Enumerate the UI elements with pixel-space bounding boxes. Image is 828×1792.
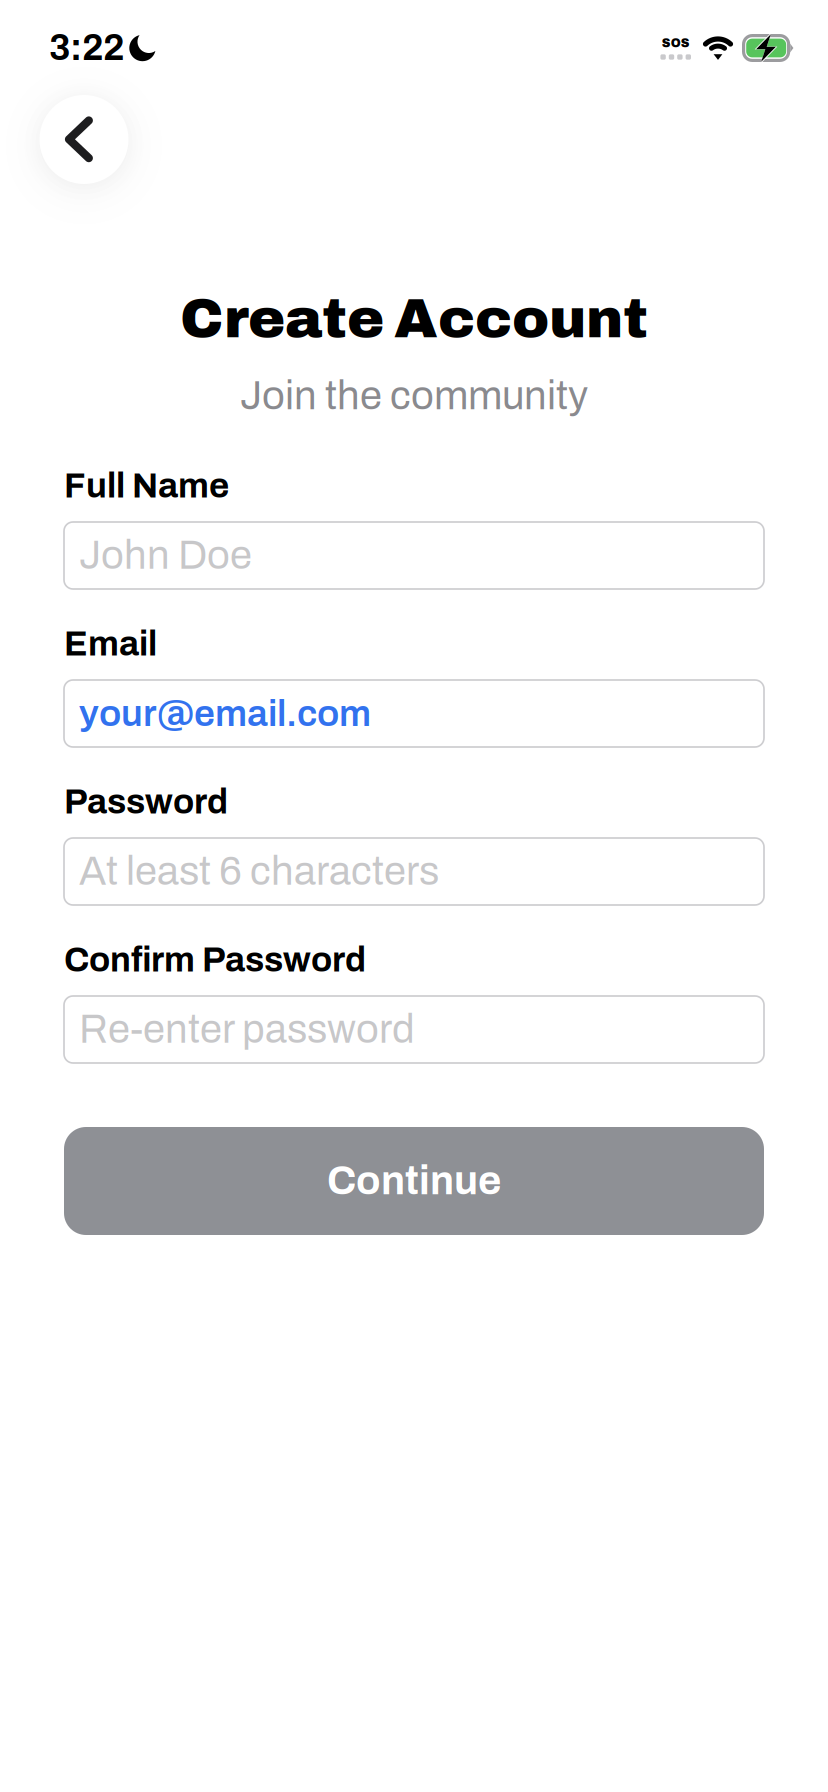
button[interactable]: Re-enter password: [64, 996, 764, 1063]
button[interactable]: your@email.com: [64, 680, 764, 747]
staticText: 3:22: [49, 28, 124, 68]
staticText: Join the community: [240, 374, 588, 418]
button[interactable]: Back: [26, 81, 142, 197]
staticText: Re-enter password: [79, 1008, 415, 1051]
staticText: Create Account: [180, 288, 648, 349]
staticText: John Doe: [79, 534, 252, 577]
button[interactable]: At least 6 characters: [64, 838, 764, 905]
staticText: Email: [64, 625, 157, 663]
staticText: Continue: [327, 1159, 501, 1203]
staticText: your@email.com: [79, 693, 371, 734]
staticText: Password: [64, 783, 228, 821]
staticText: Full Name: [64, 467, 229, 505]
button[interactable]: John Doe: [64, 522, 764, 589]
button[interactable]: Continue: [64, 1127, 764, 1235]
staticText: At least 6 characters: [79, 850, 439, 893]
staticText: SOS: [662, 37, 690, 50]
staticText: Confirm Password: [64, 941, 366, 979]
